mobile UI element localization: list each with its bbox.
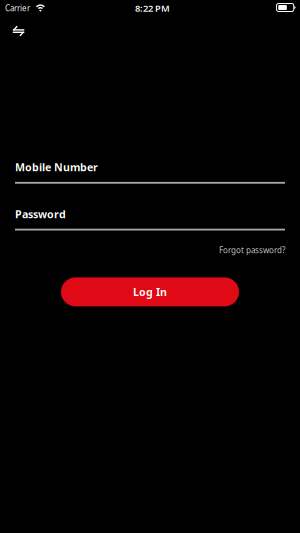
button[interactable]: Transfer [0,15,35,43]
staticText: Password [15,207,66,221]
staticText: Log In [133,285,167,299]
button[interactable]: Password [15,208,285,230]
staticText: Forgot password? [219,245,285,255]
button[interactable]: Mobile Number [15,162,285,184]
staticText: 8:22 PM [135,2,170,14]
button[interactable]: Forgot password? [219,245,285,256]
button[interactable]: Log In [61,277,239,306]
staticText: Carrier [5,3,30,13]
staticText: Mobile Number [15,160,98,174]
